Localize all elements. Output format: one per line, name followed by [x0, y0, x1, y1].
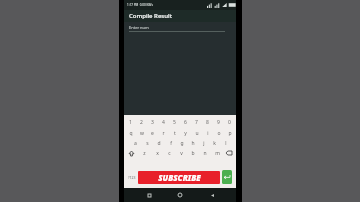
button[interactable]: s — [141, 138, 153, 148]
button[interactable]: c — [163, 148, 175, 158]
button[interactable]: t — [169, 128, 180, 138]
staticText: Enter num — [129, 25, 149, 30]
staticText: w — [140, 130, 144, 137]
button[interactable]: n — [199, 148, 211, 158]
staticText: s — [146, 140, 149, 147]
button[interactable]: z — [138, 148, 151, 158]
staticText: q — [129, 130, 133, 137]
button[interactable]: f — [165, 138, 176, 148]
button[interactable]: d — [153, 138, 165, 148]
staticText: SUBSCRIBE — [158, 172, 201, 183]
staticText: u — [195, 130, 199, 137]
staticText: j — [203, 140, 205, 147]
staticText: 0 — [228, 119, 231, 126]
staticText: h — [191, 140, 195, 147]
staticText: 7 — [195, 119, 198, 126]
staticText: 9 — [217, 119, 220, 126]
staticText: r — [162, 130, 165, 137]
staticText: x — [156, 150, 159, 157]
button[interactable]: m — [211, 148, 223, 158]
staticText: a — [134, 140, 137, 147]
button[interactable]: 7 — [191, 117, 202, 128]
button[interactable]: a — [129, 138, 141, 148]
button[interactable]: h — [187, 138, 198, 148]
button[interactable]: v — [175, 148, 187, 158]
button[interactable]: 5 — [169, 117, 180, 128]
staticText: z — [143, 150, 146, 157]
button[interactable]: Back — [205, 188, 219, 202]
staticText: v — [180, 150, 183, 157]
button[interactable]: b — [187, 148, 199, 158]
button[interactable]: 9 — [213, 117, 224, 128]
button[interactable]: Home — [173, 188, 187, 202]
staticText: c — [168, 150, 171, 157]
button[interactable]: y — [180, 128, 191, 138]
staticText: m — [215, 150, 220, 157]
staticText: p — [228, 130, 232, 137]
staticText: 1:17 PM 0.00 KB/s — [127, 3, 153, 7]
button[interactable]: Backspace — [223, 148, 235, 158]
staticText: 4 — [162, 119, 165, 126]
staticText: 2 — [140, 119, 143, 126]
staticText: 3 — [151, 119, 154, 126]
button[interactable]: 4 — [158, 117, 169, 128]
button[interactable]: j — [198, 138, 209, 148]
button[interactable]: 1 — [125, 117, 136, 128]
button[interactable]: g — [176, 138, 187, 148]
staticText: k — [213, 140, 216, 147]
button[interactable]: x — [151, 148, 163, 158]
staticText: l — [225, 140, 227, 147]
staticText: 1 — [129, 119, 132, 126]
staticText: d — [157, 140, 161, 147]
staticText: n — [203, 150, 207, 157]
staticText: o — [217, 130, 221, 137]
button[interactable]: l — [220, 138, 231, 148]
staticText: y — [184, 130, 187, 137]
staticText: g — [180, 140, 184, 147]
button[interactable]: 8 — [202, 117, 213, 128]
staticText: 8 — [206, 119, 209, 126]
staticText: t — [174, 130, 176, 137]
staticText: Compile Result — [129, 12, 172, 20]
staticText: 5 — [173, 119, 176, 126]
button[interactable]: r — [158, 128, 169, 138]
staticText: i — [207, 130, 209, 137]
staticText: f — [170, 140, 172, 147]
button[interactable]: i — [202, 128, 213, 138]
button[interactable]: Recents — [142, 188, 156, 202]
button[interactable]: q — [125, 128, 136, 138]
button[interactable]: o — [213, 128, 224, 138]
button[interactable]: u — [191, 128, 202, 138]
staticText: e — [151, 130, 154, 137]
button[interactable]: 2 — [136, 117, 147, 128]
button[interactable]: SUBSCRIBE — [138, 171, 220, 184]
button[interactable]: Shift — [125, 148, 138, 158]
button[interactable]: p — [224, 128, 235, 138]
staticText: 6 — [184, 119, 187, 126]
button[interactable]: Enter — [222, 170, 232, 184]
button[interactable]: w — [136, 128, 147, 138]
button[interactable]: 6 — [180, 117, 191, 128]
staticText: b — [191, 150, 195, 157]
button[interactable]: 0 — [224, 117, 235, 128]
button[interactable]: k — [209, 138, 220, 148]
button[interactable]: e — [147, 128, 158, 138]
button[interactable]: ?123 — [126, 168, 138, 186]
staticText: ?123 — [128, 175, 136, 180]
button[interactable]: 3 — [147, 117, 158, 128]
